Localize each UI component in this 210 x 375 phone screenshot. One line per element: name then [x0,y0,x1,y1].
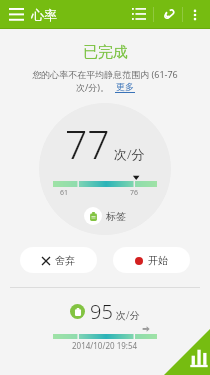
staticText: 您的心率不在平均静息范围内 (61-76 [32,68,178,80]
button[interactable]: 舍弃 [20,247,97,273]
staticText: 次/分 [116,308,140,322]
staticText: 标签 [106,210,126,223]
staticText: 次/分 [114,145,145,163]
button[interactable]: 更多 [115,81,135,93]
staticText: 心率 [31,7,57,23]
staticText: 2014/10/20 19:54 [72,340,138,351]
button[interactable]: Link [154,0,182,29]
staticText: 更多 [116,81,134,92]
staticText: 76 [130,188,139,198]
staticText: 次/分)。 [76,81,110,93]
staticText: 61 [60,188,69,198]
button[interactable]: 标签 [84,207,126,225]
button[interactable]: List [125,0,153,29]
staticText: 95 [90,298,113,325]
button[interactable]: 95 [0,298,210,351]
button[interactable]: 开始 [113,247,190,273]
staticText: 开始 [148,254,168,267]
staticText: 舍弃 [55,254,75,267]
staticText: 77 [65,117,110,170]
button[interactable]: 77 [39,103,171,235]
button[interactable]: Chart [164,329,210,375]
staticText: 已完成 [83,43,128,62]
button[interactable]: More options [183,0,207,29]
button[interactable]: Menu [5,4,27,26]
